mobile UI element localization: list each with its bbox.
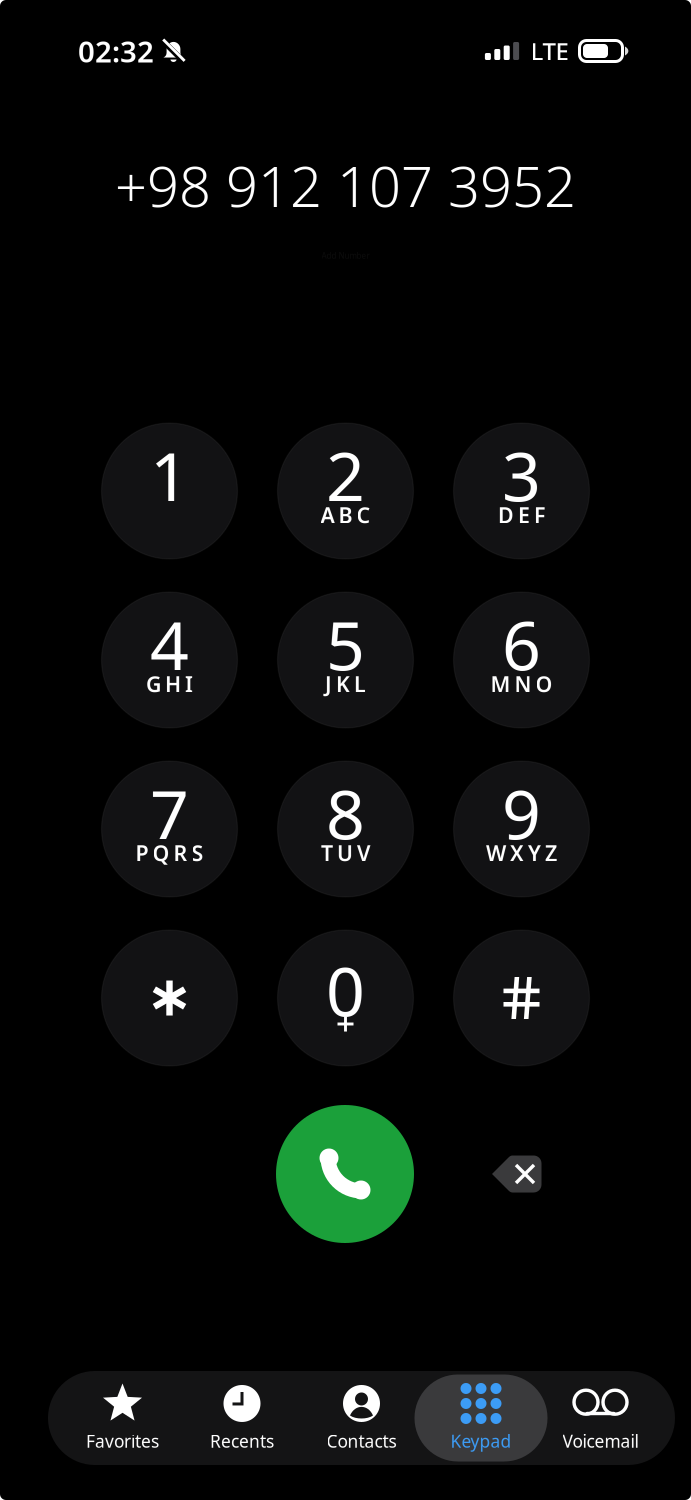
- staticText: 8: [326, 768, 365, 858]
- staticText: G: [146, 670, 161, 698]
- button[interactable]: Contacts: [302, 1374, 421, 1462]
- staticText: 0: [326, 945, 365, 1035]
- button[interactable]: 0: [277, 930, 413, 1066]
- staticText: 5: [326, 599, 365, 689]
- staticText: Z: [545, 839, 557, 867]
- staticText: Contacts: [326, 1429, 396, 1452]
- button[interactable]: 5: [277, 592, 413, 728]
- staticText: Y: [528, 839, 541, 867]
- button[interactable]: Favorites: [63, 1374, 182, 1462]
- staticText: Q: [152, 839, 169, 867]
- staticText: Recents: [210, 1429, 274, 1452]
- staticText: 1: [150, 430, 189, 520]
- button[interactable]: [453, 930, 589, 1066]
- button[interactable]: 7: [101, 761, 237, 897]
- button[interactable]: Recents: [182, 1374, 302, 1462]
- button[interactable]: Keypad: [421, 1374, 541, 1462]
- button[interactable]: [101, 930, 237, 1066]
- staticText: LTE: [530, 35, 568, 67]
- staticText: 2: [326, 430, 365, 520]
- button[interactable]: 9: [453, 761, 589, 897]
- staticText: J: [325, 670, 332, 698]
- staticText: Keypad: [450, 1429, 511, 1452]
- staticText: X: [510, 839, 524, 867]
- button[interactable]: 8: [277, 761, 413, 897]
- staticText: V: [357, 839, 370, 867]
- staticText: Voicemail: [562, 1429, 638, 1452]
- button[interactable]: Call: [276, 1105, 414, 1243]
- staticText: U: [337, 839, 353, 867]
- staticText: F: [534, 501, 545, 529]
- staticText: B: [338, 501, 352, 529]
- staticText: 4: [150, 599, 189, 689]
- staticText: H: [165, 670, 181, 698]
- button[interactable]: 6: [453, 592, 589, 728]
- staticText: K: [336, 670, 350, 698]
- staticText: R: [173, 839, 187, 867]
- staticText: P: [135, 839, 148, 867]
- staticText: E: [518, 501, 530, 529]
- staticText: 7: [150, 768, 189, 858]
- staticText: 02:32: [78, 31, 154, 70]
- button[interactable]: 4: [101, 592, 237, 728]
- staticText: Favorites: [86, 1429, 159, 1452]
- staticText: I: [185, 670, 193, 698]
- button[interactable]: Delete: [477, 1140, 557, 1208]
- button[interactable]: Voicemail: [541, 1374, 660, 1462]
- staticText: O: [535, 670, 552, 698]
- staticText: 6: [502, 599, 541, 689]
- staticText: +98 912 107 3952: [115, 148, 576, 222]
- staticText: D: [498, 501, 514, 529]
- button[interactable]: 1: [101, 423, 237, 559]
- staticText: T: [321, 839, 333, 867]
- staticText: M: [490, 670, 510, 698]
- staticText: A: [320, 501, 334, 529]
- staticText: W: [486, 839, 506, 867]
- staticText: Add Number: [321, 250, 369, 261]
- staticText: S: [191, 839, 203, 867]
- staticText: C: [356, 501, 370, 529]
- button[interactable]: 2: [277, 423, 413, 559]
- staticText: 3: [502, 430, 541, 520]
- button[interactable]: 3: [453, 423, 589, 559]
- staticText: L: [354, 670, 366, 698]
- staticText: 9: [502, 768, 541, 858]
- staticText: N: [514, 670, 531, 698]
